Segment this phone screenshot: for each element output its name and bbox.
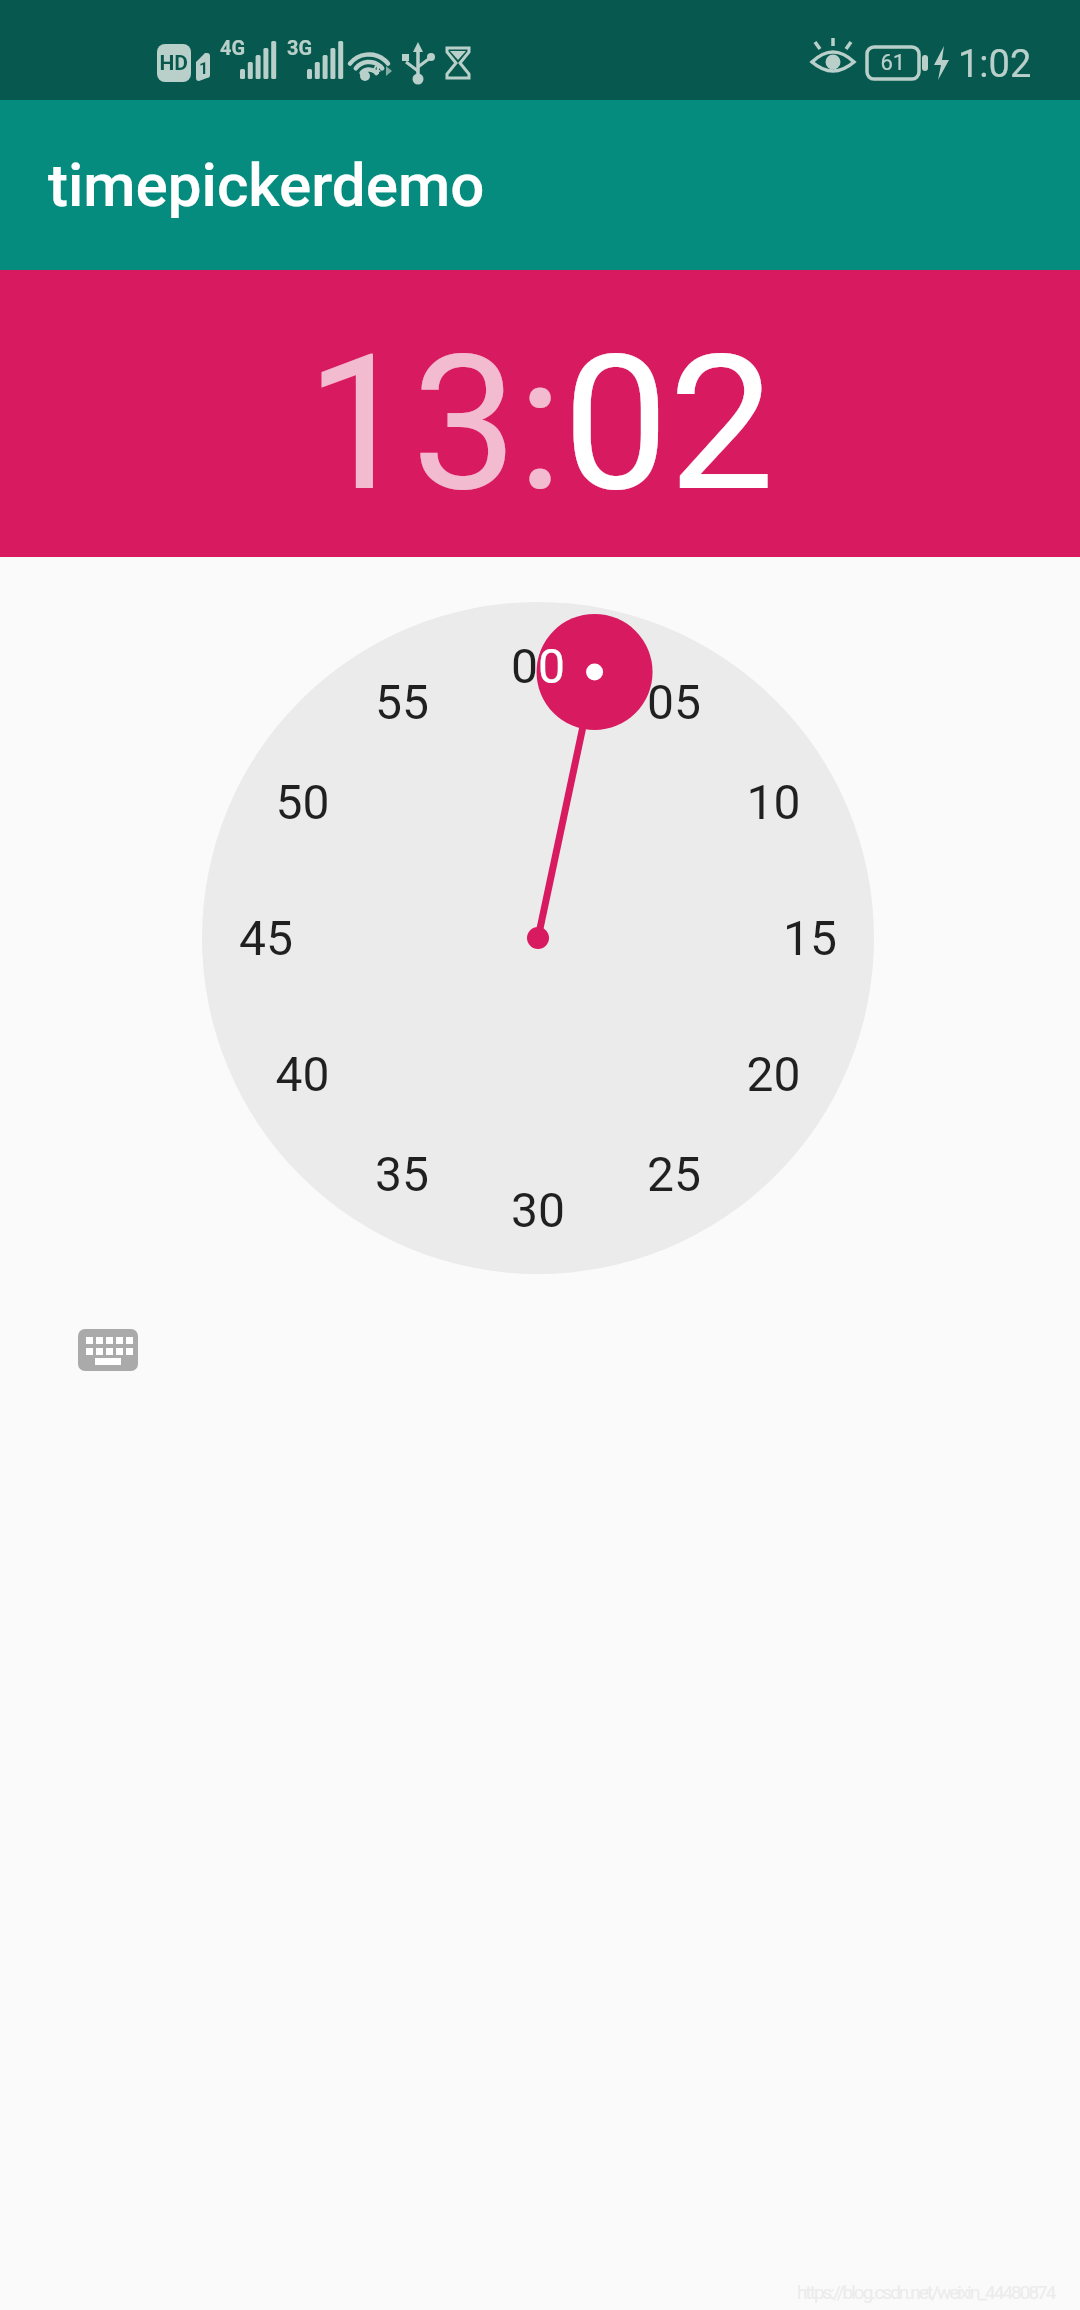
button[interactable]: 02 (563, 314, 775, 534)
staticText: https://blog.csdn.net/weixin_44480874 (797, 2281, 1055, 2303)
button[interactable] (60, 1302, 156, 1398)
button[interactable]: 13: (306, 314, 563, 534)
button[interactable]: timepickerdemo (0, 100, 1080, 270)
staticText: timepickerdemo (48, 150, 485, 220)
